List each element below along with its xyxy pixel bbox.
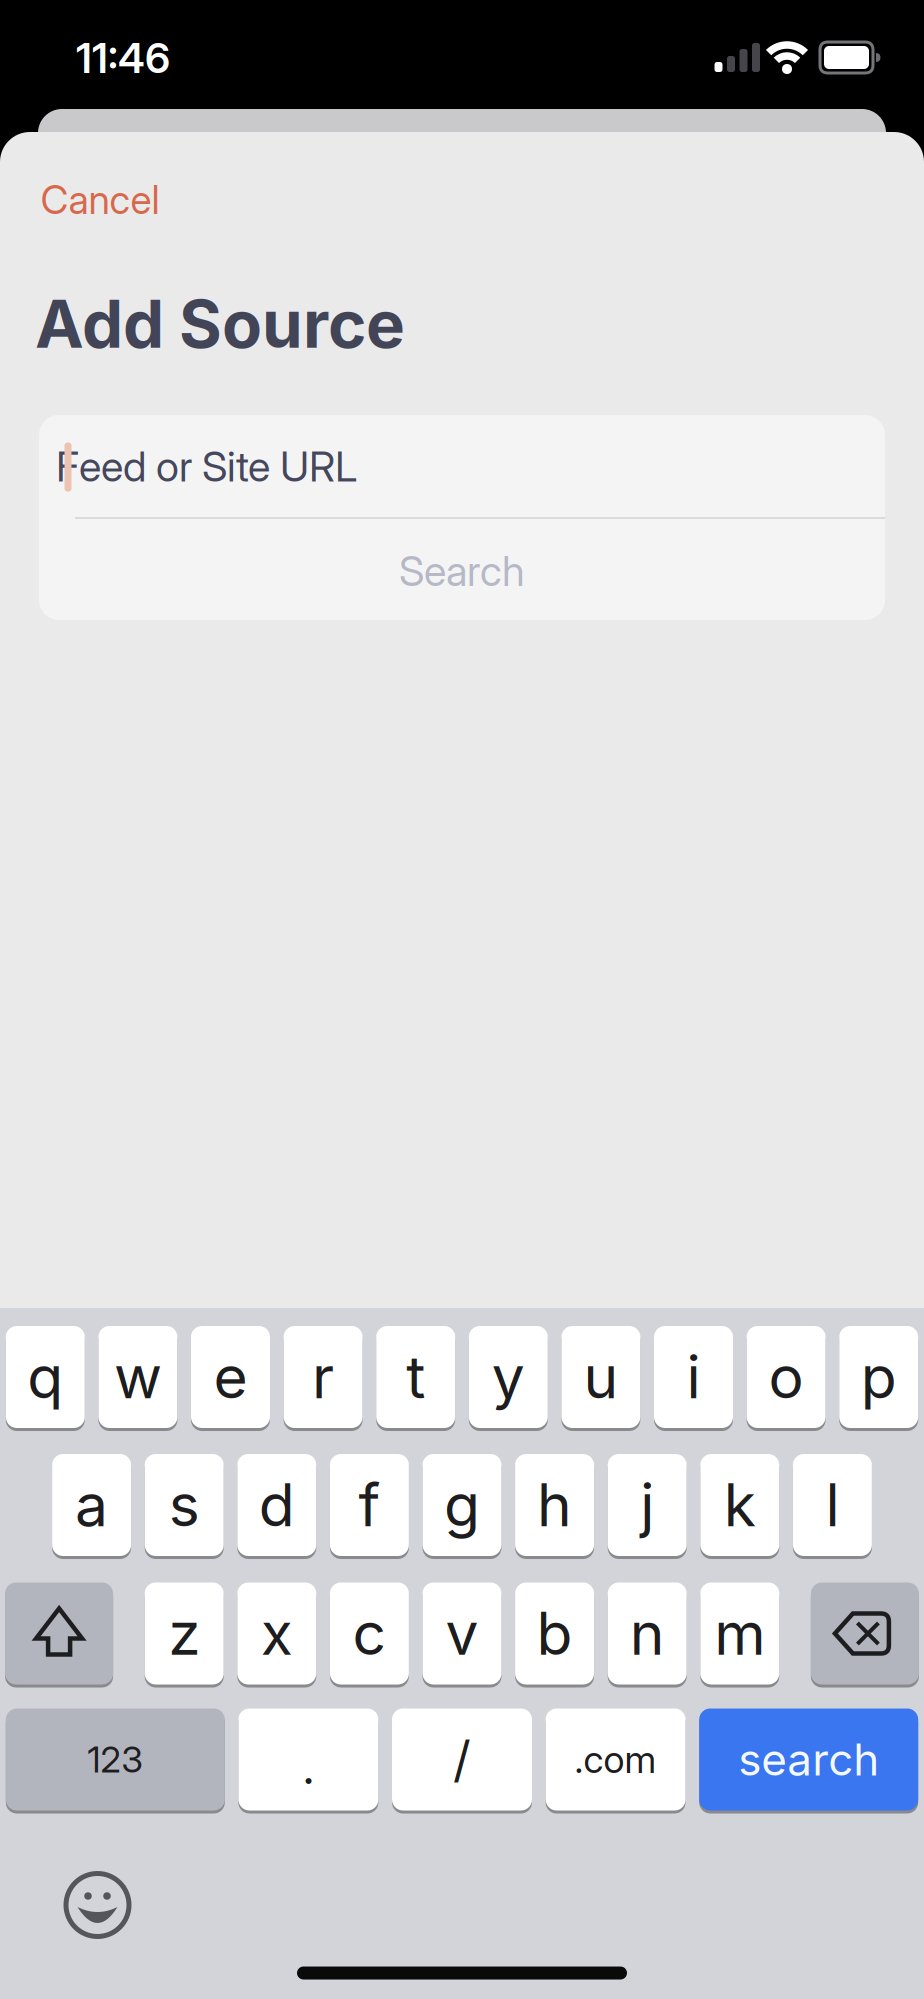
button[interactable]: Emoji: [64, 1872, 130, 1938]
staticText: o: [769, 1342, 804, 1412]
button[interactable]: i: [654, 1326, 733, 1431]
staticText: 123: [87, 1738, 143, 1781]
staticText: d: [259, 1470, 295, 1540]
button[interactable]: l: [793, 1454, 872, 1559]
staticText: z: [168, 1599, 200, 1668]
staticText: e: [213, 1342, 247, 1412]
button[interactable]: t: [376, 1326, 455, 1431]
button[interactable]: p: [839, 1326, 918, 1431]
button[interactable]: o: [747, 1326, 826, 1431]
staticText: Search: [399, 547, 525, 595]
button[interactable]: v: [422, 1582, 501, 1687]
staticText: c: [352, 1599, 386, 1668]
button[interactable]: Feed or Site URL: [39, 415, 885, 518]
button[interactable]: m: [700, 1582, 779, 1687]
staticText: m: [714, 1599, 765, 1668]
button[interactable]: h: [515, 1454, 594, 1559]
staticText: l: [825, 1470, 839, 1540]
button[interactable]: d: [237, 1454, 316, 1559]
button[interactable]: Cancel: [40, 177, 159, 223]
staticText: /: [453, 1730, 471, 1789]
button[interactable]: q: [6, 1326, 85, 1431]
staticText: t: [406, 1342, 425, 1412]
button[interactable]: g: [422, 1454, 501, 1559]
staticText: .com: [575, 1737, 657, 1781]
staticText: Feed or Site URL: [56, 442, 357, 491]
staticText: search: [738, 1733, 879, 1785]
staticText: k: [724, 1470, 756, 1540]
staticText: b: [537, 1599, 573, 1668]
staticText: s: [169, 1470, 200, 1540]
button[interactable]: k: [700, 1454, 779, 1559]
staticText: h: [537, 1470, 572, 1540]
button[interactable]: n: [608, 1582, 687, 1687]
button[interactable]: w: [98, 1326, 177, 1431]
button[interactable]: 123: [6, 1708, 225, 1813]
button[interactable]: Shift: [5, 1582, 113, 1687]
button[interactable]: Search: [39, 521, 885, 621]
button[interactable]: .: [238, 1708, 378, 1813]
staticText: a: [75, 1470, 108, 1540]
staticText: u: [583, 1342, 618, 1412]
staticText: p: [861, 1342, 897, 1412]
staticText: f: [358, 1470, 380, 1540]
button[interactable]: Delete: [811, 1582, 919, 1687]
staticText: r: [312, 1342, 334, 1412]
staticText: .: [302, 1741, 315, 1794]
button[interactable]: s: [145, 1454, 224, 1559]
button[interactable]: c: [330, 1582, 409, 1687]
button[interactable]: .com: [546, 1708, 686, 1813]
staticText: Add Source: [35, 285, 405, 363]
staticText: q: [27, 1342, 63, 1412]
staticText: v: [445, 1599, 478, 1668]
staticText: Cancel: [40, 177, 159, 223]
button[interactable]: j: [608, 1454, 687, 1559]
button[interactable]: z: [145, 1582, 224, 1687]
button[interactable]: search: [699, 1708, 918, 1813]
button[interactable]: u: [561, 1326, 640, 1431]
button[interactable]: f: [330, 1454, 409, 1559]
button[interactable]: r: [284, 1326, 363, 1431]
staticText: x: [261, 1599, 293, 1668]
button[interactable]: x: [237, 1582, 316, 1687]
button[interactable]: y: [469, 1326, 548, 1431]
staticText: i: [686, 1342, 700, 1412]
staticText: n: [630, 1599, 665, 1668]
staticText: g: [444, 1470, 480, 1540]
staticText: j: [640, 1470, 654, 1540]
staticText: 11:46: [76, 34, 170, 82]
button[interactable]: a: [52, 1454, 131, 1559]
button[interactable]: e: [191, 1326, 270, 1431]
button[interactable]: b: [515, 1582, 594, 1687]
staticText: y: [492, 1342, 525, 1412]
button[interactable]: /: [392, 1708, 532, 1813]
staticText: w: [114, 1342, 162, 1412]
